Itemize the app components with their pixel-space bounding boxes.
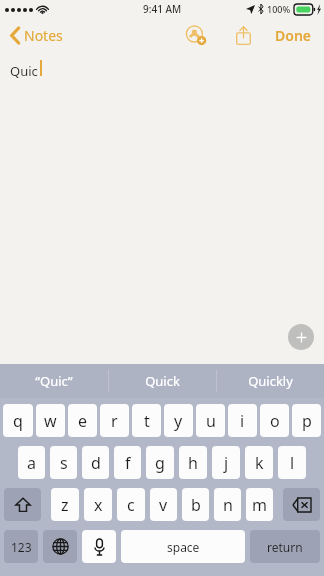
button[interactable]: Share: [230, 20, 257, 51]
staticText: 9:41 AM: [143, 2, 182, 16]
staticText: s: [60, 452, 68, 474]
staticText: b: [191, 494, 201, 516]
button[interactable]: Notes: [8, 22, 66, 49]
staticText: n: [223, 494, 233, 516]
button[interactable]: j: [212, 446, 240, 479]
button[interactable]: p: [292, 404, 321, 437]
staticText: m: [252, 494, 267, 516]
button[interactable]: “Quic”: [0, 364, 108, 398]
button[interactable]: f: [114, 446, 141, 479]
staticText: z: [61, 494, 69, 516]
staticText: Notes: [24, 26, 63, 45]
staticText: k: [255, 452, 264, 474]
staticText: 100%: [267, 3, 291, 15]
staticText: r: [111, 410, 118, 432]
staticText: x: [94, 494, 103, 516]
staticText: l: [290, 452, 295, 474]
button[interactable]: r: [100, 404, 129, 437]
staticText: a: [27, 452, 36, 474]
button[interactable]: Add people: [180, 19, 212, 51]
button[interactable]: u: [196, 404, 225, 437]
button[interactable]: return: [250, 530, 320, 563]
button[interactable]: e: [68, 404, 97, 437]
button[interactable]: q: [3, 404, 33, 437]
staticText: space: [167, 539, 200, 555]
button[interactable]: w: [36, 404, 65, 437]
button[interactable]: l: [278, 446, 306, 479]
button[interactable]: Shift: [4, 488, 41, 521]
button[interactable]: h: [179, 446, 207, 479]
staticText: o: [270, 410, 280, 432]
button[interactable]: Done: [271, 21, 316, 50]
button[interactable]: space: [121, 530, 245, 563]
staticText: Quick: [145, 372, 180, 390]
button[interactable]: x: [84, 488, 112, 521]
button[interactable]: s: [50, 446, 77, 479]
staticText: y: [174, 410, 183, 432]
button[interactable]: m: [246, 488, 273, 521]
button[interactable]: Quick: [109, 364, 216, 398]
button[interactable]: t: [132, 404, 161, 437]
button[interactable]: o: [260, 404, 289, 437]
staticText: “Quic”: [35, 372, 73, 390]
staticText: return: [267, 539, 303, 555]
button[interactable]: 123: [4, 530, 38, 563]
staticText: e: [78, 410, 88, 432]
button[interactable]: Add attachment: [288, 324, 314, 350]
staticText: i: [240, 410, 245, 432]
staticText: g: [155, 452, 165, 474]
staticText: w: [44, 410, 57, 432]
button[interactable]: v: [150, 488, 177, 521]
staticText: Done: [275, 26, 312, 45]
button[interactable]: Dictate: [82, 530, 116, 563]
staticText: q: [13, 410, 23, 432]
button[interactable]: d: [82, 446, 109, 479]
button[interactable]: c: [117, 488, 145, 521]
staticText: t: [144, 410, 150, 432]
button[interactable]: a: [18, 446, 45, 479]
staticText: h: [188, 452, 198, 474]
button[interactable]: k: [245, 446, 273, 479]
staticText: v: [159, 494, 168, 516]
staticText: f: [125, 452, 131, 474]
button[interactable]: z: [51, 488, 79, 521]
staticText: Quickly: [248, 372, 293, 390]
staticText: j: [224, 452, 229, 474]
staticText: p: [302, 410, 312, 432]
button[interactable]: Delete: [283, 488, 320, 521]
button[interactable]: g: [146, 446, 174, 479]
staticText: c: [127, 494, 135, 516]
button[interactable]: b: [182, 488, 209, 521]
staticText: Quic: [10, 62, 38, 80]
staticText: d: [91, 452, 101, 474]
staticText: 123: [11, 539, 32, 555]
button[interactable]: Change keyboard: [43, 530, 77, 563]
button[interactable]: Quickly: [217, 364, 324, 398]
button[interactable]: i: [228, 404, 257, 437]
button[interactable]: n: [214, 488, 241, 521]
button[interactable]: y: [164, 404, 193, 437]
staticText: u: [206, 410, 216, 432]
